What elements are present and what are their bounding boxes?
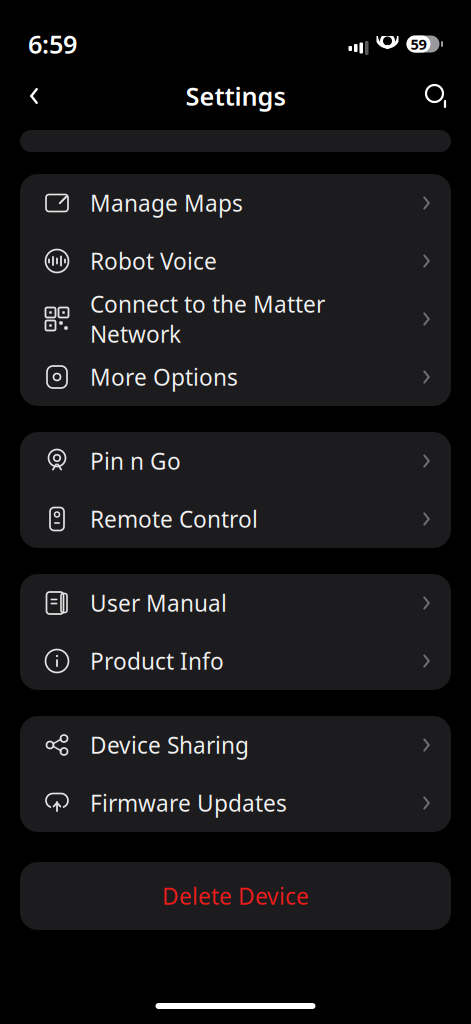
staticText: 6:59 — [28, 27, 77, 61]
staticText: Connect to the Matter Network — [90, 289, 325, 349]
button[interactable]: Manage Maps — [20, 174, 451, 232]
staticText: Robot Voice — [90, 246, 217, 276]
staticText: Device Sharing — [90, 730, 249, 760]
button[interactable]: Remote Control — [20, 490, 451, 548]
button[interactable]: Robot Voice — [20, 232, 451, 290]
button[interactable]: Pin n Go — [20, 432, 451, 490]
button[interactable]: Back — [12, 74, 56, 118]
staticText: Settings — [185, 79, 285, 113]
button[interactable]: Search — [415, 74, 459, 118]
staticText: Delete Device — [162, 881, 309, 911]
button[interactable]: More Options — [20, 348, 451, 406]
staticText: User Manual — [90, 588, 227, 618]
staticText: Firmware Updates — [90, 788, 287, 818]
staticText: Pin n Go — [90, 446, 181, 476]
button[interactable]: Connect to the Matter Network — [20, 290, 451, 348]
staticText: Remote Control — [90, 504, 258, 534]
button[interactable]: Device Sharing — [20, 716, 451, 774]
staticText: Product Info — [90, 646, 224, 676]
button[interactable]: User Manual — [20, 574, 451, 632]
staticText: 59 — [410, 34, 426, 54]
button[interactable]: Product Info — [20, 632, 451, 690]
staticText: More Options — [90, 362, 238, 392]
button[interactable]: Delete Device — [20, 862, 451, 930]
staticText: Manage Maps — [90, 188, 243, 218]
button[interactable]: Firmware Updates — [20, 774, 451, 832]
